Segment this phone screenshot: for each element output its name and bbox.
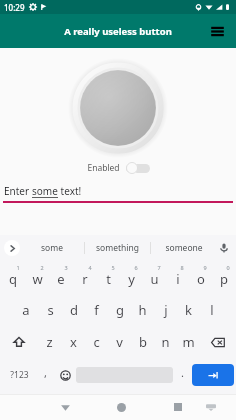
button[interactable]: v [108, 326, 131, 358]
staticText: 8 [180, 264, 184, 271]
button[interactable]: k [177, 294, 200, 326]
staticText: someone [165, 242, 203, 254]
button[interactable]: Expand suggestions [4, 240, 20, 256]
staticText: y [128, 270, 135, 288]
button[interactable]: Emoji [55, 358, 76, 392]
staticText: 9 [203, 264, 207, 271]
staticText: x [70, 333, 77, 351]
staticText: w [32, 270, 43, 288]
button[interactable]: Enabled [87, 162, 150, 174]
button[interactable]: 7 [143, 261, 166, 294]
button[interactable]: , [36, 358, 55, 392]
staticText: v [116, 333, 123, 351]
button[interactable]: Menu [206, 20, 228, 42]
button[interactable]: . [173, 358, 192, 392]
staticText: d [70, 301, 78, 319]
button[interactable]: Home [104, 394, 139, 420]
button[interactable]: Voice input [216, 240, 232, 256]
button[interactable]: Recents [160, 394, 195, 420]
staticText: 10:29 [4, 2, 25, 13]
staticText: 0 [226, 264, 230, 271]
button[interactable]: 6 [120, 261, 143, 294]
staticText: g [116, 301, 124, 319]
staticText: , [44, 365, 47, 380]
button[interactable]: a [14, 294, 38, 326]
staticText: k [185, 301, 192, 319]
staticText: some [41, 242, 63, 254]
button[interactable]: Back [48, 394, 83, 420]
button[interactable]: 2 [25, 261, 49, 294]
button[interactable]: 9 [189, 261, 212, 294]
staticText: m [182, 333, 195, 351]
button[interactable]: Shift [1, 326, 37, 358]
staticText: j [164, 301, 168, 319]
staticText: o [197, 270, 205, 288]
button[interactable]: g [108, 294, 131, 326]
button[interactable]: Enter [192, 364, 234, 386]
button[interactable]: h [131, 294, 154, 326]
button[interactable]: 4 [73, 261, 97, 294]
button[interactable]: someone [151, 235, 216, 261]
staticText: text! [58, 184, 82, 198]
button[interactable]: 8 [166, 261, 189, 294]
staticText: n [161, 333, 170, 351]
staticText: i [176, 270, 180, 288]
button[interactable]: some [20, 235, 84, 261]
staticText: c [93, 333, 100, 351]
staticText: . [181, 365, 184, 380]
button[interactable]: z [37, 326, 61, 358]
staticText: 5 [111, 264, 115, 271]
button[interactable]: f [85, 294, 108, 326]
button[interactable]: ?123 [2, 358, 36, 392]
button[interactable]: j [154, 294, 177, 326]
button[interactable]: Backspace [200, 326, 235, 358]
button[interactable]: 1 [1, 261, 25, 294]
button[interactable]: something [85, 235, 150, 261]
staticText: s [47, 301, 54, 319]
staticText: something [96, 242, 139, 254]
button[interactable]: m [177, 326, 200, 358]
staticText: h [138, 301, 147, 319]
staticText: Enter [4, 184, 32, 198]
button[interactable]: Enter [0, 184, 236, 203]
button[interactable]: x [61, 326, 85, 358]
button[interactable]: b [131, 326, 154, 358]
staticText: 6 [134, 264, 138, 271]
staticText: a [22, 301, 30, 319]
staticText: f [94, 301, 99, 319]
staticText: r [82, 270, 88, 288]
button[interactable]: A really useless button [68, 58, 168, 158]
staticText: l [210, 301, 214, 319]
button[interactable]: s [38, 294, 62, 326]
staticText: p [220, 270, 228, 288]
button[interactable]: 5 [97, 261, 120, 294]
staticText: 2 [40, 264, 44, 271]
staticText: 4 [88, 264, 92, 271]
staticText: Enabled [87, 162, 120, 174]
staticText: e [57, 270, 65, 288]
staticText: some [32, 184, 58, 198]
button[interactable]: 3 [49, 261, 73, 294]
staticText: q [9, 270, 17, 288]
staticText: t [106, 270, 111, 288]
staticText: u [150, 270, 159, 288]
button[interactable]: n [154, 326, 177, 358]
button[interactable]: l [200, 294, 223, 326]
staticText: ?123 [10, 369, 29, 381]
staticText: z [46, 333, 53, 351]
staticText: b [139, 333, 147, 351]
staticText: 3 [64, 264, 68, 271]
staticText: 1 [16, 264, 20, 271]
button[interactable]: d [62, 294, 85, 326]
button[interactable]: Switch keyboard [195, 394, 226, 420]
button[interactable]: c [85, 326, 108, 358]
staticText: 7 [157, 264, 161, 271]
staticText: A really useless button [64, 25, 172, 38]
button[interactable]: 0 [212, 261, 235, 294]
